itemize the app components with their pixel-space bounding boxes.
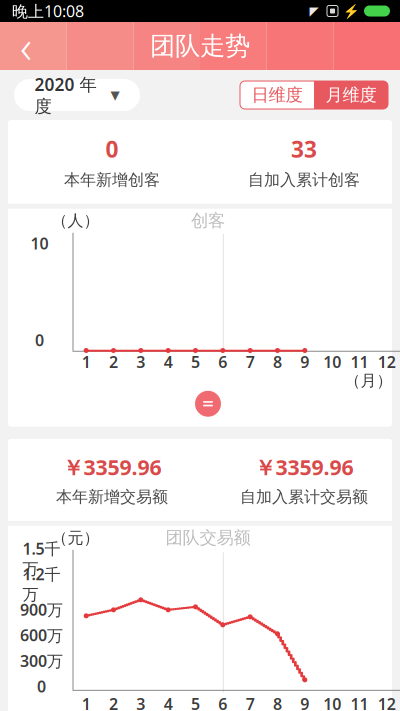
staticText: 1.5千万: [22, 538, 60, 579]
staticText: 2: [109, 693, 118, 711]
button[interactable]: 日维度: [240, 81, 314, 109]
staticText: 1: [82, 693, 91, 711]
staticText: 10: [30, 233, 48, 254]
button[interactable]: Chart options: [195, 391, 221, 417]
staticText: 5: [191, 693, 200, 711]
staticText: 3: [136, 693, 145, 711]
staticText: ￥3359.96: [254, 453, 353, 481]
staticText: 12: [378, 693, 396, 711]
staticText: 8: [273, 351, 282, 372]
staticText: ⚡: [343, 3, 360, 19]
staticText: 自加入累计创客: [248, 170, 360, 190]
staticText: 自加入累计交易额: [240, 487, 368, 507]
staticText: （元）: [51, 528, 99, 548]
staticText: 日维度: [251, 84, 302, 106]
staticText: 本年新增交易额: [56, 487, 168, 507]
staticText: 8: [273, 693, 282, 711]
staticText: 600万: [20, 624, 63, 646]
staticText: 5: [191, 351, 200, 372]
staticText: 4: [164, 693, 173, 711]
staticText: 6: [218, 351, 227, 372]
staticText: 1.2千万: [22, 563, 60, 604]
staticText: 9: [300, 693, 309, 711]
staticText: 团队交易额: [165, 527, 250, 548]
staticText: 3: [136, 351, 145, 372]
staticText: 0: [37, 676, 46, 697]
staticText: ‹: [20, 16, 32, 76]
button[interactable]: Back: [0, 22, 52, 70]
staticText: 本年新增创客: [64, 170, 160, 190]
staticText: 9: [300, 351, 309, 372]
staticText: （月）: [344, 371, 392, 391]
staticText: （人）: [51, 211, 99, 231]
staticText: 12: [378, 351, 396, 372]
staticText: 300万: [20, 650, 63, 671]
staticText: 0: [35, 329, 44, 351]
staticText: 团队走势: [150, 30, 250, 61]
staticText: 900万: [20, 599, 63, 620]
staticText: 月维度: [325, 84, 376, 106]
staticText: 4: [164, 351, 173, 372]
staticText: 10: [323, 693, 341, 711]
staticText: 7: [246, 351, 255, 372]
staticText: 7: [246, 693, 255, 711]
staticText: 6: [218, 693, 227, 711]
staticText: 晚上10:08: [12, 0, 84, 22]
button[interactable]: 月维度: [314, 81, 388, 109]
staticText: 创客: [191, 210, 225, 231]
staticText: 2: [109, 351, 118, 372]
staticText: ◤: [309, 4, 318, 18]
staticText: 33: [291, 134, 317, 164]
button[interactable]: 2020 年度: [14, 79, 140, 111]
staticText: 10: [323, 351, 341, 372]
staticText: 2020 年度: [34, 73, 96, 117]
staticText: 1: [82, 351, 91, 372]
staticText: ▼: [110, 88, 119, 102]
staticText: 11: [350, 351, 368, 372]
staticText: 11: [350, 693, 368, 711]
staticText: ￥3359.96: [62, 453, 161, 481]
staticText: 0: [105, 134, 118, 164]
